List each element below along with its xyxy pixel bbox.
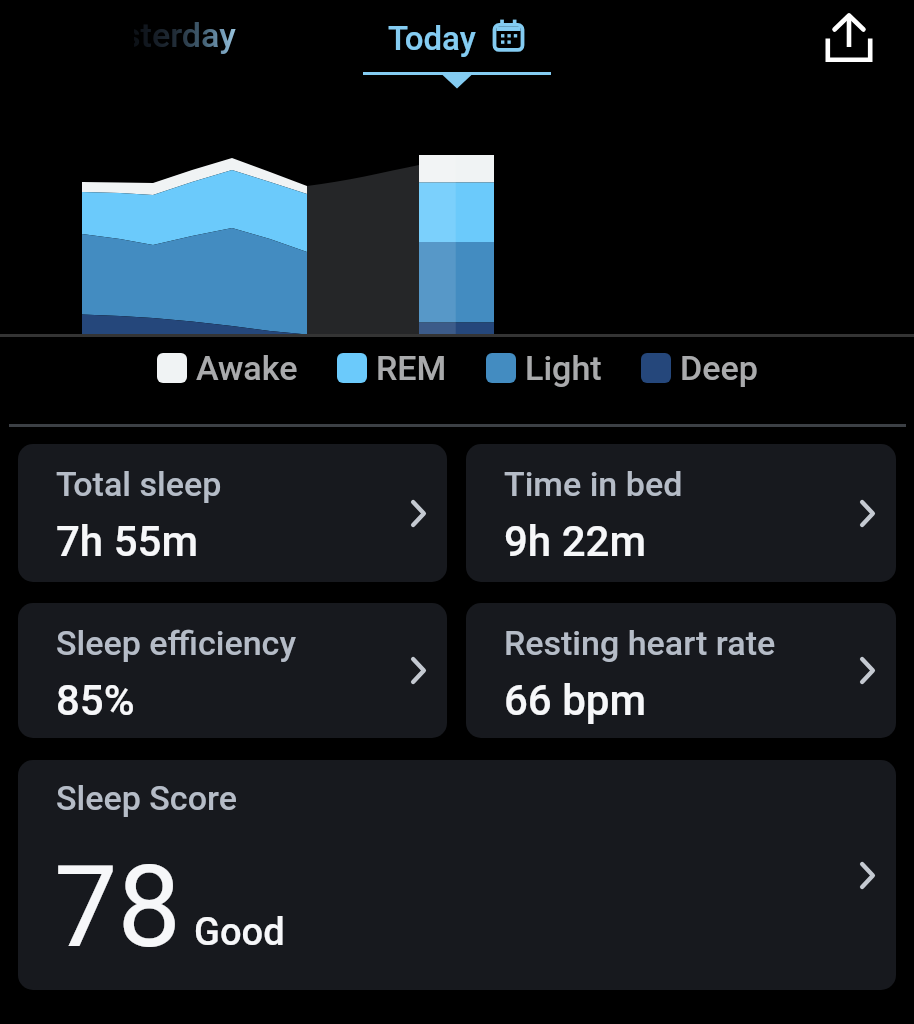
staticText: 7h 55m bbox=[56, 517, 198, 566]
button[interactable]: Today bbox=[363, 4, 551, 86]
button[interactable]: Sleep Score bbox=[18, 760, 896, 990]
staticText: Sleep efficiency bbox=[56, 623, 296, 663]
staticText: Light bbox=[525, 348, 602, 388]
button[interactable]: sterday bbox=[134, 12, 252, 64]
staticText: REM bbox=[376, 348, 447, 388]
staticText: Total sleep bbox=[56, 464, 222, 504]
staticText: Today bbox=[388, 19, 476, 58]
staticText: Awake bbox=[196, 348, 298, 388]
staticText: 78 bbox=[54, 841, 182, 973]
staticText: Resting heart rate bbox=[504, 623, 776, 663]
staticText: 9h 22m bbox=[504, 517, 646, 566]
staticText: Good bbox=[194, 910, 285, 955]
staticText: 66 bpm bbox=[504, 676, 647, 725]
staticText: Time in bed bbox=[504, 464, 683, 504]
staticText: Deep bbox=[680, 348, 758, 388]
staticText: Sleep Score bbox=[56, 778, 237, 818]
staticText: 85% bbox=[56, 676, 135, 725]
button[interactable]: Time in bed bbox=[466, 444, 896, 582]
button[interactable]: Share bbox=[823, 12, 875, 66]
button[interactable]: Total sleep bbox=[18, 444, 447, 582]
button[interactable]: Sleep efficiency bbox=[18, 603, 447, 738]
button[interactable]: Resting heart rate bbox=[466, 603, 896, 738]
staticText: sterday bbox=[134, 15, 236, 55]
